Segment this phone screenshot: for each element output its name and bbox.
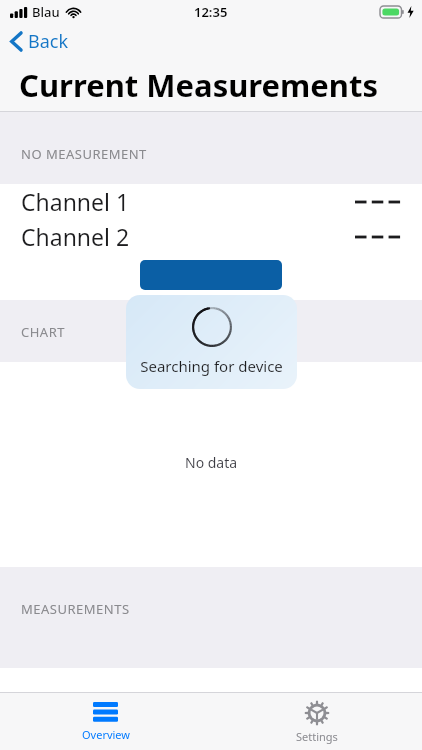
staticText: CHART [21, 323, 65, 341]
staticText: NO MEASUREMENT [21, 145, 147, 163]
staticText: Overview [82, 727, 130, 742]
button[interactable]: Overview [0, 693, 211, 750]
button[interactable]: Channel 2 [0, 219, 422, 254]
staticText: Back [28, 29, 69, 54]
button[interactable]: Start measurement [140, 260, 282, 290]
button[interactable]: Channel 1 [0, 184, 422, 219]
button[interactable]: Back [10, 24, 69, 58]
staticText: Channel 2 [21, 221, 130, 252]
staticText: Blau [32, 3, 60, 21]
staticText: Settings [296, 729, 338, 744]
staticText: 12:35 [194, 3, 228, 21]
staticText: No data [185, 453, 238, 472]
staticText: Channel 1 [21, 186, 130, 217]
button[interactable]: Settings [211, 693, 422, 750]
staticText: Searching for device [140, 356, 283, 376]
staticText: MEASUREMENTS [21, 600, 130, 618]
staticText: Current Measurements [19, 64, 378, 106]
